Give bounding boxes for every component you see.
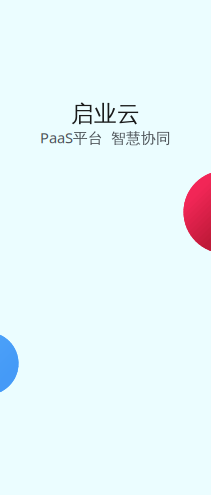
staticText: PaaS平台 智慧协同 [40,128,171,147]
staticText: 启业云 [71,100,140,128]
